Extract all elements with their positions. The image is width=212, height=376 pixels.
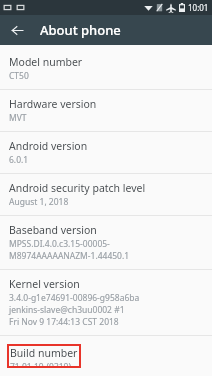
button[interactable]: Model number [0,48,212,89]
staticText: Android security patch level [9,181,146,195]
staticText: 6.0.1 [9,154,29,166]
button[interactable]: Back [5,18,29,42]
staticText: Build number [10,346,78,360]
staticText: Hardware version [9,97,97,111]
staticText: MVT [9,112,27,124]
staticText: Fri Nov 9 17:44:13 CST 2018 [9,316,119,328]
staticText: Android version [9,139,88,153]
staticText: CT50 [9,70,29,82]
staticText: Baseband version [9,223,97,237]
staticText: Model number [9,55,83,69]
button[interactable]: Android version [0,132,212,173]
button[interactable]: Build number [0,336,212,376]
staticText: About phone [40,21,121,39]
staticText: 3.4.0-g1e74691-00896-g958a6ba [9,292,140,304]
button[interactable]: Baseband version [0,216,212,269]
button[interactable]: Android security patch level [0,174,212,215]
staticText: August 1, 2018 [9,196,69,208]
staticText: Kernel version [9,277,80,291]
staticText: MPSS.DI.4.0.c3.15-00005- [9,238,110,250]
staticText: 10:01 [188,2,209,13]
staticText: jenkins-slave@ch3uu0002 #1 [9,304,125,316]
staticText: M8974AAAAANAZM-1.44450.1 [9,250,130,262]
staticText: 71.01.19-(0310) [10,361,72,366]
button[interactable]: Hardware version [0,90,212,131]
button[interactable]: Kernel version [0,270,212,335]
